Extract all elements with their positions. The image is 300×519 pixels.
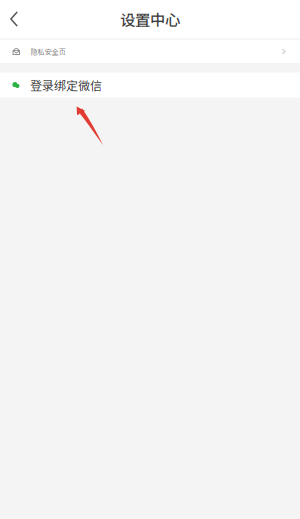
button[interactable]: 隐私安全页 — [0, 40, 300, 63]
staticText: 隐私安全页 — [30, 46, 65, 57]
staticText: 设置中心 — [120, 8, 180, 30]
button[interactable]: 登录绑定微信 — [0, 72, 300, 97]
staticText: 登录绑定微信 — [30, 76, 102, 94]
button[interactable]: Back — [0, 0, 40, 38]
